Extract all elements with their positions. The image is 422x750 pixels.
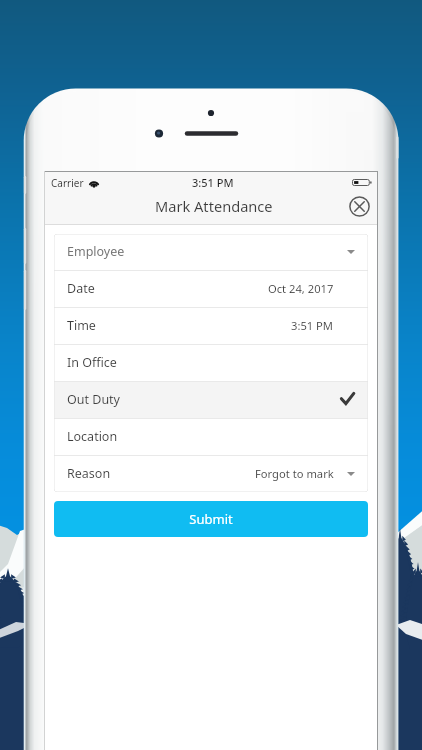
staticText: Carrier: [51, 176, 84, 190]
staticText: Employee: [67, 243, 125, 260]
staticText: Mark Attendance: [155, 196, 273, 216]
staticText: 3:51 PM: [291, 318, 334, 333]
button[interactable]: In Office: [54, 345, 368, 381]
button[interactable]: Out Duty: [54, 382, 368, 418]
button[interactable]: Close: [345, 192, 373, 220]
button[interactable]: Reason: [54, 456, 368, 492]
staticText: Out Duty: [67, 391, 120, 408]
staticText: Date: [67, 280, 95, 297]
staticText: 3:51 PM: [192, 175, 234, 190]
button[interactable]: Location: [54, 419, 368, 455]
staticText: Reason: [67, 465, 111, 482]
staticText: Oct 24, 2017: [268, 281, 334, 296]
button[interactable]: Submit: [54, 501, 368, 537]
staticText: Time: [67, 317, 96, 334]
button[interactable]: Time: [54, 308, 368, 344]
button[interactable]: Date: [54, 271, 368, 307]
staticText: Location: [67, 428, 118, 445]
button[interactable]: Employee: [54, 234, 368, 270]
staticText: Submit: [189, 510, 233, 528]
staticText: Forgot to mark: [255, 466, 334, 481]
staticText: In Office: [67, 354, 117, 371]
